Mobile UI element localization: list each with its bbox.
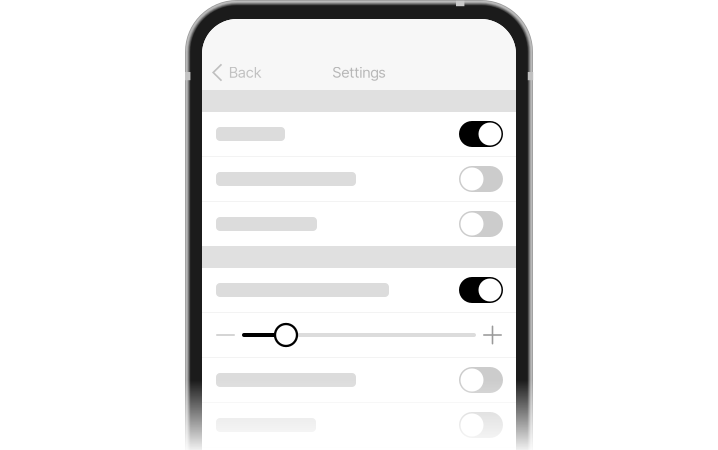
button[interactable]: Setting enabled bbox=[459, 277, 503, 303]
button[interactable] bbox=[202, 157, 516, 201]
button[interactable]: Volume slider bbox=[202, 313, 516, 357]
button[interactable] bbox=[202, 403, 516, 447]
button[interactable] bbox=[202, 202, 516, 246]
button[interactable] bbox=[202, 358, 516, 402]
staticText: Back bbox=[229, 64, 261, 81]
button[interactable]: Setting disabled bbox=[459, 412, 503, 438]
button[interactable]: Setting disabled bbox=[459, 211, 503, 237]
button[interactable] bbox=[202, 268, 516, 312]
button[interactable]: Back bbox=[202, 55, 275, 90]
staticText: Settings bbox=[332, 64, 385, 81]
button[interactable]: Setting disabled bbox=[459, 166, 503, 192]
button[interactable]: Setting disabled bbox=[459, 367, 503, 393]
button[interactable]: Setting enabled bbox=[459, 121, 503, 147]
button[interactable] bbox=[202, 112, 516, 156]
